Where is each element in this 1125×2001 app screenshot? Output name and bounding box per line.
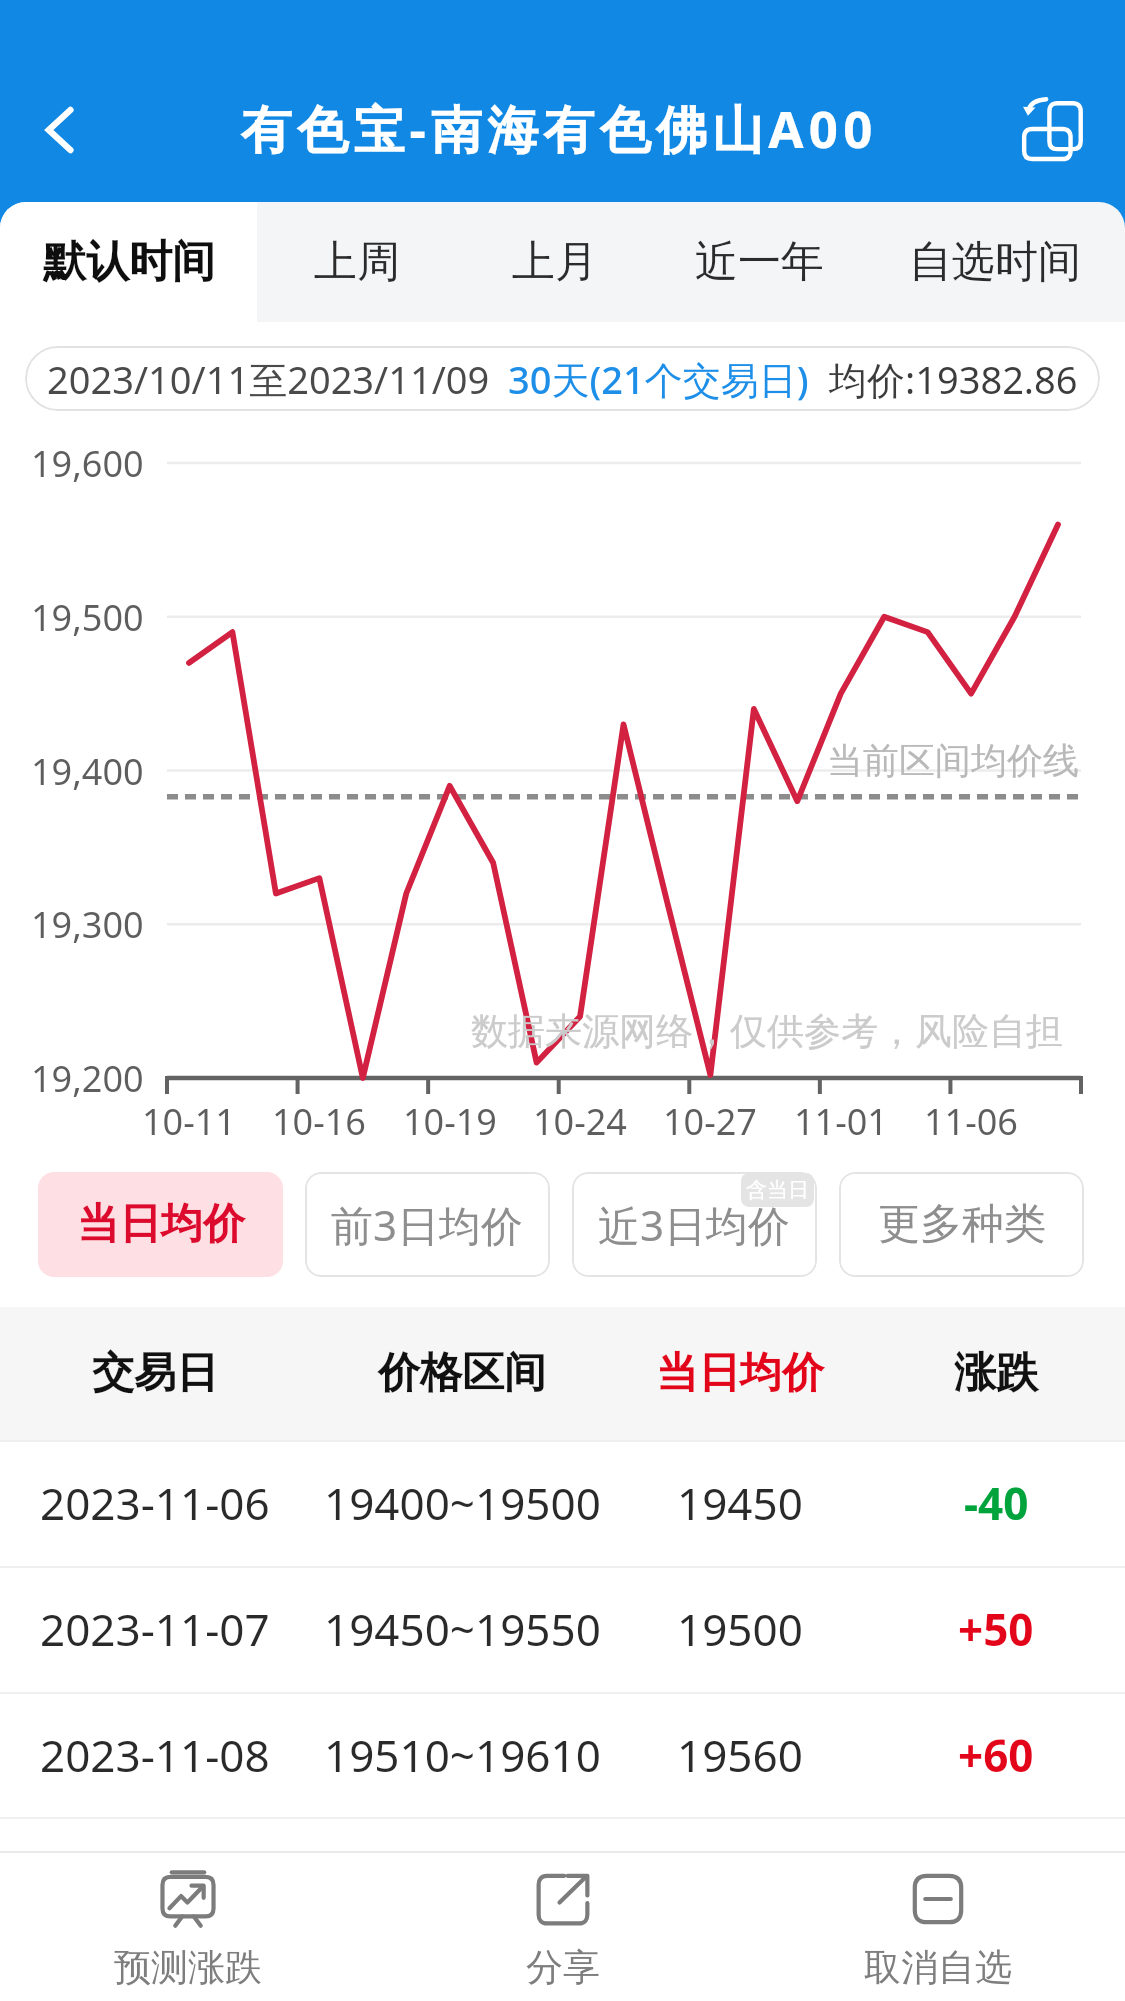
staticText: 11-01 xyxy=(794,1097,888,1146)
staticText: 取消自选 xyxy=(864,1944,1012,1991)
button[interactable]: 当日均价 xyxy=(38,1172,283,1277)
staticText: 2023-11-07 xyxy=(40,1599,270,1659)
staticText: 均价:19382.86 xyxy=(829,353,1078,405)
staticText: 涨跌 xyxy=(954,1347,1038,1400)
staticText: 2023/10/11至2023/11/09 xyxy=(47,353,490,405)
staticText: 10-24 xyxy=(533,1097,627,1146)
button[interactable]: 默认时间 xyxy=(0,202,257,322)
button[interactable]: 近3日均价 xyxy=(572,1172,817,1277)
staticText: 当日均价 xyxy=(77,1198,245,1251)
staticText: -40 xyxy=(964,1473,1029,1533)
button[interactable]: 取消自选 xyxy=(750,1851,1125,2001)
staticText: 19450 xyxy=(677,1473,803,1533)
staticText: 含当日 xyxy=(746,1177,809,1203)
staticText: 10-19 xyxy=(403,1097,497,1146)
staticText: 自选时间 xyxy=(909,235,1081,289)
button[interactable]: 近一年 xyxy=(653,202,865,322)
staticText: +60 xyxy=(958,1725,1034,1785)
button[interactable]: 2023-11-08 xyxy=(0,1692,1125,1818)
staticText: 2023-11-08 xyxy=(40,1725,270,1785)
staticText: 19400~19500 xyxy=(324,1473,601,1533)
staticText: 当前区间均价线 xyxy=(827,738,1079,783)
staticText: 更多种类 xyxy=(878,1198,1046,1251)
button[interactable]: 前3日均价 xyxy=(305,1172,550,1277)
staticText: 19,300 xyxy=(31,900,144,949)
button[interactable]: 分享 xyxy=(375,1851,750,2001)
staticText: 价格区间 xyxy=(378,1347,546,1400)
button[interactable]: 更多种类 xyxy=(839,1172,1084,1277)
staticText: 2023-11-06 xyxy=(40,1473,270,1533)
staticText: 近一年 xyxy=(695,235,824,289)
staticText: 默认时间 xyxy=(43,235,215,289)
button[interactable]: Back xyxy=(0,64,118,196)
staticText: 10-27 xyxy=(663,1097,757,1146)
staticText: 19,500 xyxy=(31,593,144,642)
button[interactable]: 2023-11-06 xyxy=(0,1440,1125,1566)
staticText: 10-11 xyxy=(142,1097,236,1146)
staticText: 上月 xyxy=(512,235,598,289)
button[interactable]: Rotate screen xyxy=(994,63,1110,195)
staticText: 19,200 xyxy=(31,1054,144,1103)
button[interactable]: 自选时间 xyxy=(865,202,1125,322)
staticText: 19510~19610 xyxy=(324,1725,601,1785)
staticText: 近3日均价 xyxy=(598,1196,791,1253)
staticText: 当日均价 xyxy=(656,1347,824,1400)
staticText: 10-16 xyxy=(272,1097,366,1146)
staticText: 分享 xyxy=(526,1944,600,1991)
staticText: 19,400 xyxy=(31,747,144,796)
staticText: 交易日 xyxy=(92,1347,218,1400)
staticText: 有色宝-南海有色佛山A00 xyxy=(241,93,878,163)
staticText: 19450~19550 xyxy=(324,1599,601,1659)
staticText: 数据来源网络，仅供参考，风险自担 xyxy=(471,1008,1063,1055)
button[interactable]: 2023/10/11至2023/11/09 xyxy=(25,346,1100,411)
staticText: 11-06 xyxy=(924,1097,1018,1146)
staticText: 前3日均价 xyxy=(331,1196,524,1253)
staticText: 19,600 xyxy=(31,439,144,488)
staticText: 19500 xyxy=(677,1599,803,1659)
staticText: 19560 xyxy=(677,1725,803,1785)
staticText: 上周 xyxy=(314,235,400,289)
button[interactable]: 2023-11-07 xyxy=(0,1566,1125,1692)
button[interactable]: 上月 xyxy=(457,202,653,322)
staticText: +50 xyxy=(958,1599,1034,1659)
button[interactable]: 上周 xyxy=(257,202,457,322)
staticText: 30天(21个交易日) xyxy=(508,353,809,405)
button[interactable]: 预测涨跌 xyxy=(0,1851,375,2001)
staticText: 预测涨跌 xyxy=(114,1944,262,1991)
